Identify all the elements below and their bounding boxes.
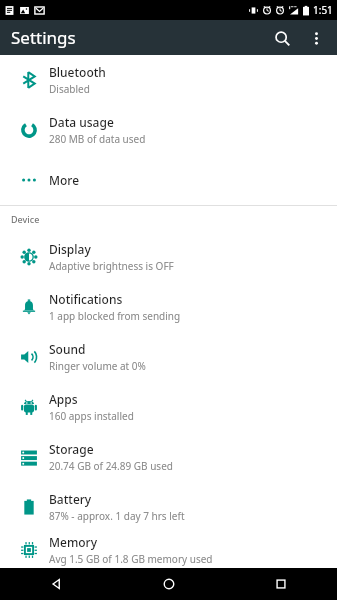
button[interactable]: Data usage: [0, 105, 337, 155]
button[interactable]: Back: [0, 568, 113, 600]
staticText: 20.74 GB of 24.89 GB used: [49, 459, 173, 473]
staticText: 1 app blocked from sending: [49, 309, 181, 323]
button[interactable]: More options: [299, 21, 333, 55]
button[interactable]: Storage: [0, 432, 337, 482]
staticText: Bluetooth: [49, 64, 106, 80]
button[interactable]: Notifications: [0, 282, 337, 332]
staticText: Avg 1.5 GB of 1.8 GB memory used: [49, 552, 213, 566]
button[interactable]: Recent apps: [225, 568, 337, 600]
staticText: Disabled: [49, 82, 90, 96]
staticText: Device: [11, 213, 40, 225]
staticText: 87% - approx. 1 day 7 hrs left: [49, 509, 185, 523]
staticText: Sound: [49, 341, 86, 357]
staticText: Ringer volume at 0%: [49, 359, 146, 373]
button[interactable]: Home: [113, 568, 225, 600]
button[interactable]: More: [0, 155, 337, 205]
button[interactable]: Display: [0, 232, 337, 282]
staticText: Memory: [49, 534, 98, 550]
staticText: 160 apps installed: [49, 409, 134, 423]
staticText: 1:51: [313, 3, 333, 17]
staticText: Apps: [49, 391, 78, 407]
staticText: Storage: [49, 441, 94, 457]
button[interactable]: Memory: [0, 532, 337, 568]
staticText: Data usage: [49, 114, 114, 130]
staticText: More: [49, 172, 80, 188]
button[interactable]: Sound: [0, 332, 337, 382]
button[interactable]: Bluetooth: [0, 55, 337, 105]
staticText: 280 MB of data used: [49, 132, 146, 146]
button[interactable]: Apps: [0, 382, 337, 432]
staticText: Battery: [49, 491, 92, 507]
staticText: Display: [49, 241, 91, 257]
staticText: Notifications: [49, 291, 123, 307]
staticText: Adaptive brightness is OFF: [49, 259, 174, 273]
button[interactable]: Battery: [0, 482, 337, 532]
button[interactable]: Search: [265, 21, 299, 55]
staticText: Settings: [11, 26, 76, 49]
